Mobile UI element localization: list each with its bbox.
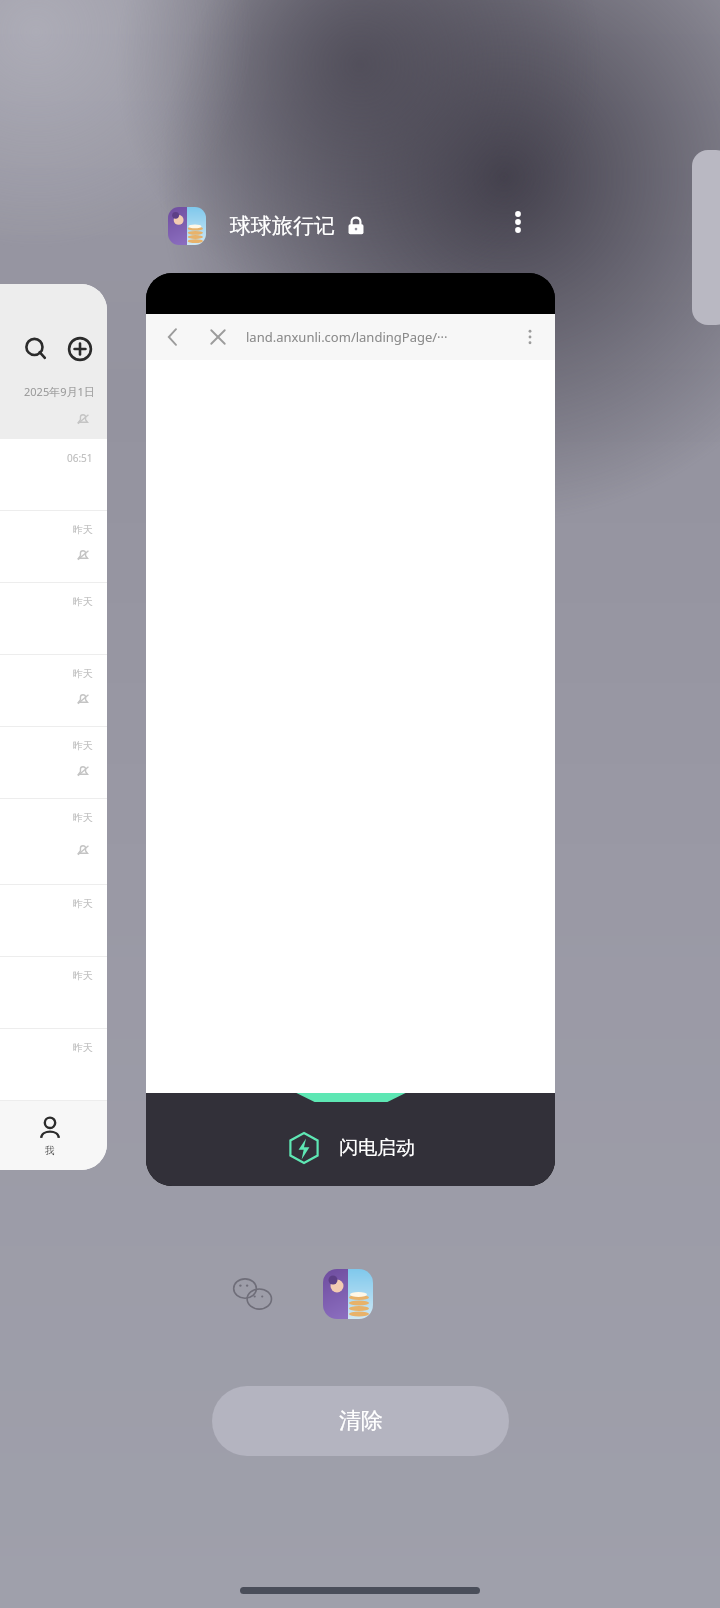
button[interactable]: 06:51 [0,439,107,511]
button[interactable]: 球球旅行记 [323,1269,373,1319]
staticText: 昨天 [73,523,93,536]
button[interactable]: Search [23,336,49,362]
button[interactable]: Add [67,336,93,362]
staticText: land.anxunli.com/landingPage/··· [246,328,448,346]
button[interactable]: 昨天 [0,727,107,799]
button[interactable]: Back [146,273,555,1186]
staticText: 06:51 [67,451,93,465]
button[interactable]: Browser menu [517,324,543,350]
button[interactable]: 我 [37,1115,63,1157]
button[interactable]: 昨天 [0,799,107,885]
button[interactable]: 昨天 [0,583,107,655]
staticText: 昨天 [73,969,93,982]
button[interactable]: Search [0,284,107,1170]
button[interactable]: Close [204,323,232,351]
staticText: 昨天 [73,739,93,752]
staticText: 昨天 [73,667,93,680]
staticText: 昨天 [73,595,93,608]
button[interactable]: 闪电启动 [287,1131,415,1165]
button[interactable]: More options [498,202,538,242]
button[interactable]: 昨天 [0,957,107,1029]
button[interactable]: 昨天 [0,511,107,583]
staticText: 昨天 [73,811,93,824]
staticText: 闪电启动 [339,1136,415,1160]
button[interactable]: WeChat [225,1266,281,1322]
button[interactable]: 昨天 [0,885,107,957]
staticText: 昨天 [73,1041,93,1054]
staticText: 2025年9月1日 [24,384,95,399]
button[interactable]: App icon [168,207,206,245]
button[interactable]: Back [158,322,188,352]
staticText: 球球旅行记 [230,213,335,239]
staticText: 我 [45,1144,55,1157]
staticText: 清除 [339,1407,383,1435]
button[interactable]: 昨天 [0,655,107,727]
button[interactable]: Lock app [345,215,367,237]
staticText: 昨天 [73,897,93,910]
button[interactable]: 清除 [212,1386,509,1456]
button[interactable]: 昨天 [0,1029,107,1101]
